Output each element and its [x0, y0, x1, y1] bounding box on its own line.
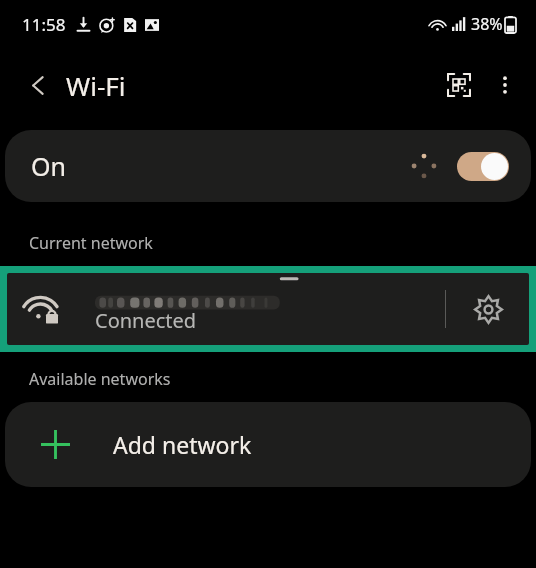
staticText: Current network [29, 232, 153, 254]
staticText: Connected [95, 307, 197, 334]
staticText: Available networks [29, 368, 171, 390]
button[interactable]: On [5, 130, 531, 202]
button[interactable]: Add network [5, 402, 531, 487]
button[interactable]: Scan QR code [436, 62, 482, 108]
staticText: Add network [113, 429, 252, 460]
staticText: Wi-Fi [66, 68, 126, 103]
button[interactable]: Connected [7, 273, 529, 345]
button[interactable]: Wi-Fi on [457, 152, 509, 181]
button[interactable]: Navigate up [16, 63, 60, 107]
staticText: On [31, 149, 66, 183]
staticText: 38% [471, 13, 503, 35]
staticText: 11:58 [22, 13, 66, 36]
button[interactable]: Network settings [459, 280, 517, 338]
button[interactable]: More options [482, 62, 528, 108]
